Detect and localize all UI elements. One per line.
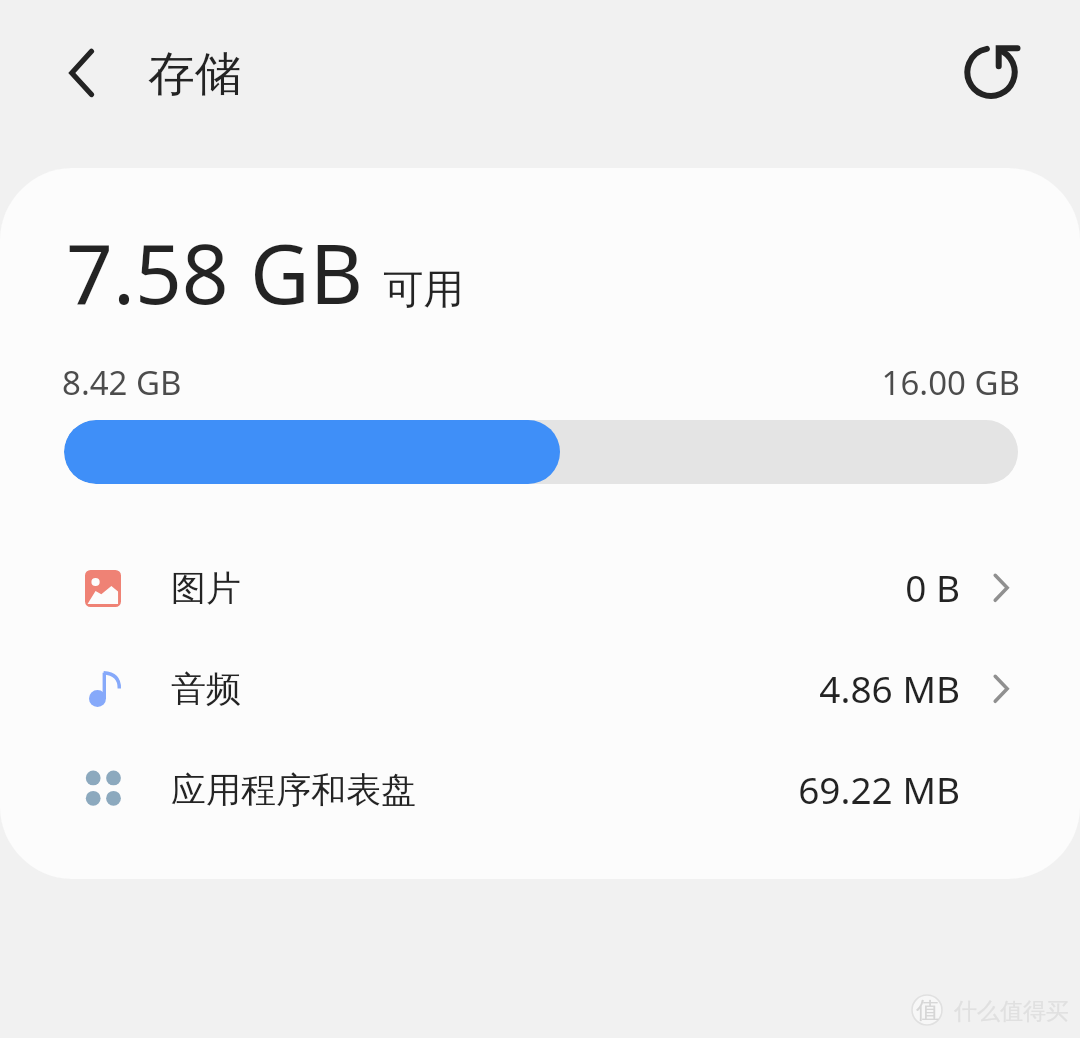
button[interactable]: Refresh: [951, 33, 1031, 113]
staticText: 值: [916, 996, 939, 1025]
staticText: 0 B: [5, 562, 960, 612]
staticText: 图片: [171, 566, 241, 610]
staticText: 8.42 GB: [62, 360, 182, 405]
staticText: 应用程序和表盘: [171, 768, 416, 812]
staticText: 音频: [171, 667, 241, 711]
staticText: 69.22 MB: [5, 764, 960, 814]
staticText: 可用: [383, 264, 464, 315]
staticText: 4.86 MB: [5, 663, 960, 713]
button[interactable]: 应用程序和表盘: [2, 743, 1078, 844]
button[interactable]: Back: [45, 36, 119, 110]
staticText: 存储: [148, 45, 242, 104]
staticText: 什么值得买: [954, 997, 1069, 1026]
staticText: 16.00 GB: [0, 360, 1020, 405]
button[interactable]: 图片: [2, 541, 1078, 642]
button[interactable]: 音频: [2, 642, 1078, 743]
staticText: 7.58 GB: [66, 216, 364, 328]
